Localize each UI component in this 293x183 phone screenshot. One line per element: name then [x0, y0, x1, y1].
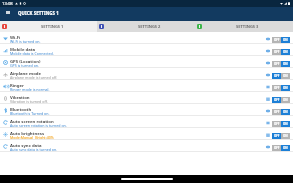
button[interactable]: OFF [272, 37, 290, 43]
button[interactable]: OFF [272, 145, 290, 151]
button[interactable]: OFF [272, 73, 290, 79]
staticText: Airplane mode is turned off. [10, 75, 58, 80]
staticText: Airplane mode [10, 70, 42, 76]
staticText: OFF [274, 62, 280, 66]
staticText: ON [283, 50, 288, 54]
staticText: OFF [274, 146, 280, 150]
button[interactable]: Open navigation drawer [0, 7, 16, 21]
staticText: ON [283, 38, 288, 42]
staticText: Wi-Fi is turned on. [10, 39, 41, 44]
button[interactable]: OFF [272, 85, 290, 91]
staticText: ON [283, 86, 288, 90]
button[interactable]: Auto sync data [0, 140, 293, 152]
button[interactable]: OFF [272, 121, 290, 127]
button[interactable]: Mobile data [0, 44, 293, 56]
staticText: Vibration is turned off. [10, 99, 48, 104]
staticText: ON [283, 74, 288, 78]
button[interactable]: SETTINGS 2 [97, 21, 195, 32]
button[interactable]: Auto brightness [0, 128, 293, 140]
staticText: Mobile data is Connected. [10, 51, 54, 56]
staticText: Bluetooth [10, 106, 32, 112]
staticText: SETTINGS 1 [41, 24, 64, 29]
button[interactable]: Bluetooth [0, 104, 293, 116]
staticText: ON [283, 110, 288, 114]
button[interactable]: OFF [272, 109, 290, 115]
staticText: Ringer [10, 82, 24, 88]
staticText: Auto screen rotation [10, 118, 54, 124]
button[interactable]: Ringer [0, 80, 293, 92]
staticText: SETTINGS 3 [236, 24, 259, 29]
staticText: GPS is turned on. [10, 63, 40, 68]
staticText: OFF [274, 38, 280, 42]
staticText: OFF [274, 98, 280, 102]
staticText: OFF [274, 122, 280, 126]
staticText: OFF [274, 134, 280, 138]
staticText: Vibration [10, 94, 30, 100]
staticText: OFF [274, 110, 280, 114]
staticText: GPS (Location) [10, 58, 41, 64]
button[interactable]: Vibration [0, 92, 293, 104]
button[interactable]: SETTINGS 3 [195, 21, 293, 32]
staticText: Mode:Manual, Bright:40% [10, 135, 54, 140]
staticText: Ringer mode is normal. [10, 87, 50, 92]
button[interactable]: SETTINGS 1 [0, 21, 97, 32]
button[interactable]: Wi-Fi [0, 32, 293, 44]
button[interactable]: OFF [272, 97, 290, 103]
button[interactable]: OFF [272, 49, 290, 55]
staticText: OFF [274, 50, 280, 54]
staticText: ON [283, 146, 288, 150]
staticText: Auto sync data [10, 142, 42, 148]
staticText: OFF [274, 74, 280, 78]
staticText: Auto sync data is turned on. [10, 147, 58, 152]
staticText: ON [283, 134, 288, 138]
button[interactable]: OFF [272, 61, 290, 67]
button[interactable]: Airplane mode [0, 68, 293, 80]
button[interactable]: GPS (Location) [0, 56, 293, 68]
button[interactable]: Auto screen rotation [0, 116, 293, 128]
staticText: 13:08 [2, 1, 13, 7]
button[interactable]: OFF [272, 133, 290, 139]
staticText: OFF [274, 86, 280, 90]
staticText: SETTINGS 2 [138, 24, 161, 29]
staticText: ON [283, 62, 288, 66]
staticText: Bluetooth is Turned on. [10, 111, 50, 116]
staticText: ON [283, 122, 288, 126]
staticText: ON [283, 98, 288, 102]
staticText: QUICK SETTINGS 1 [18, 10, 59, 16]
staticText: Auto brightness [10, 130, 45, 136]
staticText: Mobile data [10, 46, 36, 52]
staticText: Auto screen rotation is turned on. [10, 123, 67, 128]
staticText: Wi-Fi [10, 34, 21, 40]
